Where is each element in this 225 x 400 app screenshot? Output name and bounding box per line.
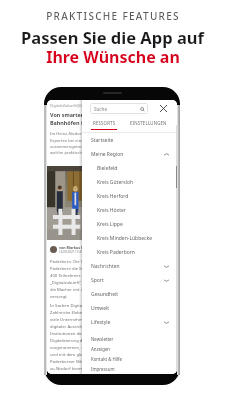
button[interactable]: Meine Region [82,147,177,161]
staticText: In Sachen Digitalisie Zahlreiche Elektro… [50,303,91,371]
staticText: Impressum [91,366,115,372]
button[interactable]: Gesundheit [82,287,177,301]
staticText: Meine Region [91,151,124,158]
button[interactable]: Kreis Höxter [82,203,177,217]
staticText: Bielefeld [97,165,118,172]
staticText: Kreis Gütersloh [97,179,134,186]
staticText: Von smarten Bahnhöfen in d [50,111,91,127]
staticText: Im Heinz-Nixdorf Mus Experten bei einer … [50,131,94,155]
button[interactable]: Kreis Minden-Lübbecke [82,231,177,245]
staticText: EINSTELLUNGEN [130,120,167,126]
button[interactable]: Newsletter [82,334,177,344]
button[interactable]: RESSORTS [91,118,117,132]
button[interactable]: Kontakt & Hilfe [82,354,177,364]
staticText: Kreis Minden-Lübbecke [97,235,152,242]
button[interactable]: Bielefeld [82,161,177,175]
staticText: Startseite [91,137,114,144]
button[interactable]: Startseite [82,133,177,147]
button[interactable]: Kreis Herford [82,189,177,203]
staticText: Kreis Höxter [97,207,126,214]
button[interactable]: Umwelt [82,301,177,315]
staticText: Newsletter [91,336,114,342]
staticText: Lifestyle [91,319,111,326]
staticText: Paderborn. Die Stad Paderborn die Initia… [50,259,91,299]
staticText: Kreis Lippe [97,221,123,228]
button[interactable]: Kreis Lippe [82,217,177,231]
staticText: RESSORTS [93,120,116,126]
staticText: Kreis Paderborn [97,249,135,256]
button[interactable]: Kreis Paderborn [82,245,177,259]
staticText: Gesundheit [91,291,119,298]
button[interactable]: Nachrichten [82,259,177,273]
staticText: Suche [94,106,107,112]
button[interactable]: Anzeigen [82,344,177,354]
staticText: PRAKTISCHE FEATURES [46,9,180,23]
staticText: Kreis Herford [97,193,129,200]
button[interactable]: Sport [82,273,177,287]
button[interactable]: Suche [90,103,148,114]
staticText: Nachrichten [91,263,120,270]
staticText: von Markus Poch [59,245,90,250]
staticText: Sport [91,277,104,284]
staticText: Ihre Wünsche an [46,46,180,68]
other: Search [140,107,145,112]
button[interactable]: EINSTELLUNGEN [130,118,177,132]
staticText: Umwelt [91,305,110,312]
button[interactable]: Kreis Gütersloh [82,175,177,189]
staticText: Passen Sie die App auf [21,26,204,48]
staticText: 14.09.2021 17:41 Uhr [59,250,89,254]
staticText: Anzeigen [91,346,111,352]
staticText: DigitaleZukunft@OWL [50,103,88,108]
button[interactable]: Close [157,103,169,114]
button[interactable]: Lifestyle [82,315,177,329]
staticText: Kontakt & Hilfe [91,356,123,362]
button[interactable]: Impressum [82,364,177,374]
